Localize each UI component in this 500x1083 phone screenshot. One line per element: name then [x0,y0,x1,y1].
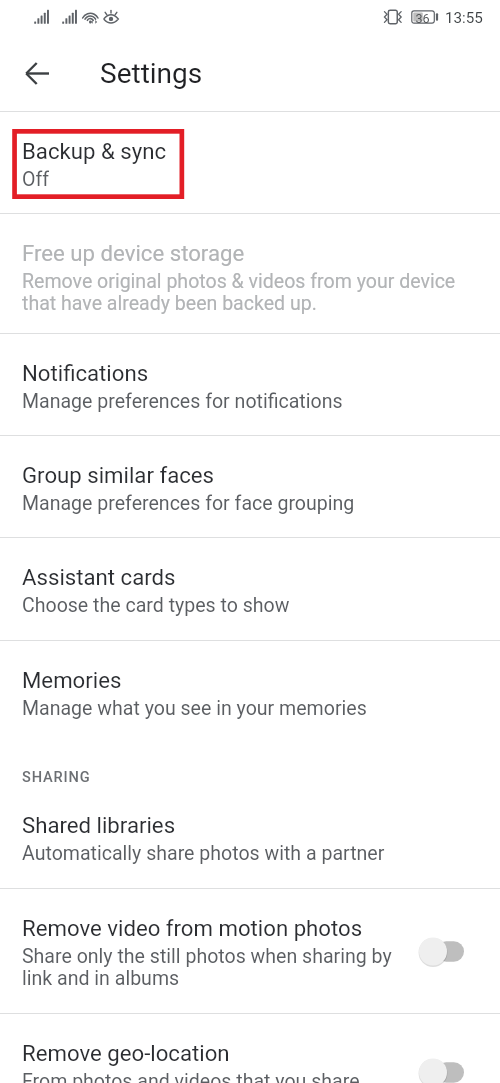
button[interactable]: Remove geo-location [0,1014,500,1083]
staticText: 36 [415,11,430,26]
staticText: Manage what you see in your memories [22,697,367,720]
staticText: Free up device storage [22,240,245,266]
button[interactable]: Toggle [419,937,464,966]
staticText: Automatically share photos with a partne… [22,842,385,865]
button[interactable]: Memories [0,641,500,736]
staticText: SHARING [22,768,91,785]
button[interactable]: Back [13,49,61,97]
staticText: Memories [22,667,122,693]
staticText: Assistant cards [22,564,176,590]
button[interactable]: Toggle [419,1062,464,1083]
staticText: Settings [100,57,203,90]
button[interactable]: Notifications [0,334,500,435]
button[interactable]: Assistant cards [0,538,500,640]
staticText: Shared libraries [22,812,176,838]
staticText: Remove original photos & videos from you… [22,270,470,315]
button[interactable]: Remove video from motion photos [0,889,500,1013]
staticText: Choose the card types to show [22,594,290,617]
staticText: Backup & sync [22,138,167,164]
staticText: Remove geo-location [22,1040,230,1066]
button[interactable]: Group similar faces [0,436,500,537]
staticText: Group similar faces [22,462,215,488]
staticText: Manage preferences for face grouping [22,492,355,515]
staticText: Remove video from motion photos [22,915,363,941]
staticText: Share only the still photos when sharing… [22,945,410,990]
button[interactable]: Shared libraries [0,785,500,888]
staticText: Notifications [22,360,149,386]
staticText: Manage preferences for notifications [22,390,343,413]
button[interactable]: Free up device storage [0,214,500,333]
button[interactable]: Backup & sync [0,112,500,213]
staticText: 13:55 [445,9,483,27]
staticText: From photos and videos that you share [22,1070,360,1083]
staticText: Off [22,168,50,191]
